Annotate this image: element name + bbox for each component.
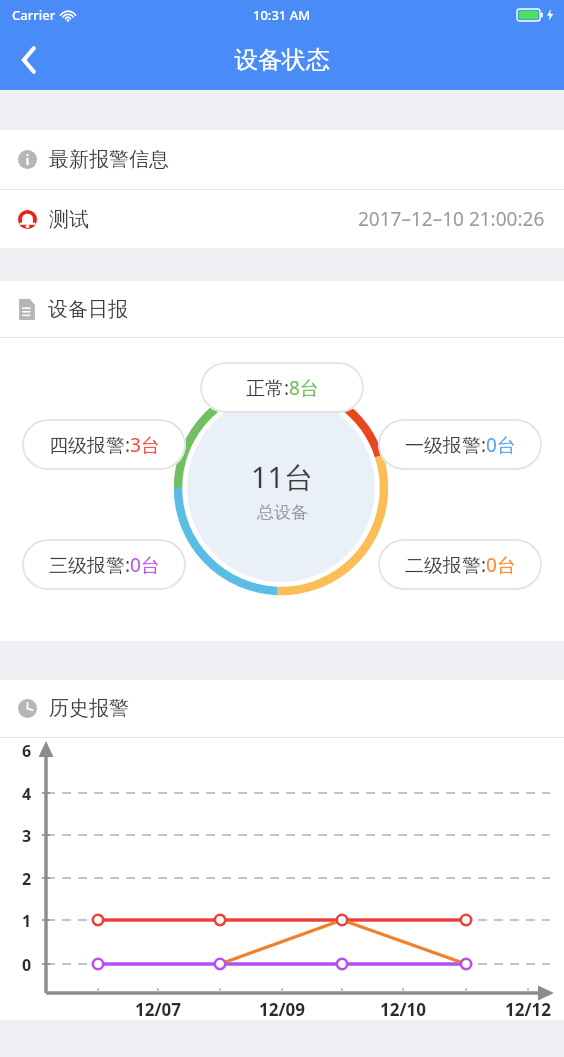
staticText: 四级报警:3台 — [49, 432, 160, 458]
button[interactable]: Back — [0, 30, 58, 90]
button[interactable]: 四级报警:3台 — [22, 419, 186, 470]
staticText: 6 — [22, 740, 32, 762]
button[interactable]: 测试 — [0, 190, 564, 248]
staticText: 最新报警信息 — [49, 147, 169, 172]
staticText: 正常:8台 — [246, 375, 319, 401]
button[interactable]: 正常:8台 — [200, 362, 364, 413]
staticText: 12/12 — [494, 998, 562, 1021]
staticText: 12/07 — [124, 998, 192, 1021]
staticText: 0 — [22, 954, 32, 976]
staticText: 三级报警:0台 — [49, 552, 160, 578]
button[interactable]: 最新报警信息 — [0, 130, 564, 189]
staticText: 测试 — [49, 207, 89, 232]
staticText: 12/09 — [248, 998, 316, 1021]
staticText: 4 — [22, 783, 32, 805]
button[interactable]: 三级报警:0台 — [22, 539, 186, 590]
button[interactable]: 二级报警:0台 — [378, 539, 542, 590]
staticText: 3 — [22, 825, 32, 847]
staticText: 12/10 — [369, 998, 437, 1021]
staticText: 一级报警:0台 — [405, 432, 516, 458]
button[interactable]: 设备日报 — [0, 281, 564, 337]
staticText: 2 — [22, 868, 32, 890]
staticText: 1 — [22, 910, 32, 932]
button[interactable]: 历史报警 — [0, 680, 564, 737]
staticText: Carrier — [12, 6, 56, 24]
staticText: 二级报警:0台 — [405, 552, 516, 578]
staticText: 设备状态 — [234, 45, 330, 75]
staticText: 设备日报 — [48, 297, 128, 322]
staticText: 总设备 — [257, 502, 308, 523]
staticText: 10:31 AM — [253, 6, 311, 24]
staticText: 11台 — [251, 457, 314, 497]
staticText: 历史报警 — [49, 696, 129, 721]
button[interactable]: 一级报警:0台 — [378, 419, 542, 470]
staticText: 2017–12–10 21:00:26 — [358, 206, 545, 232]
